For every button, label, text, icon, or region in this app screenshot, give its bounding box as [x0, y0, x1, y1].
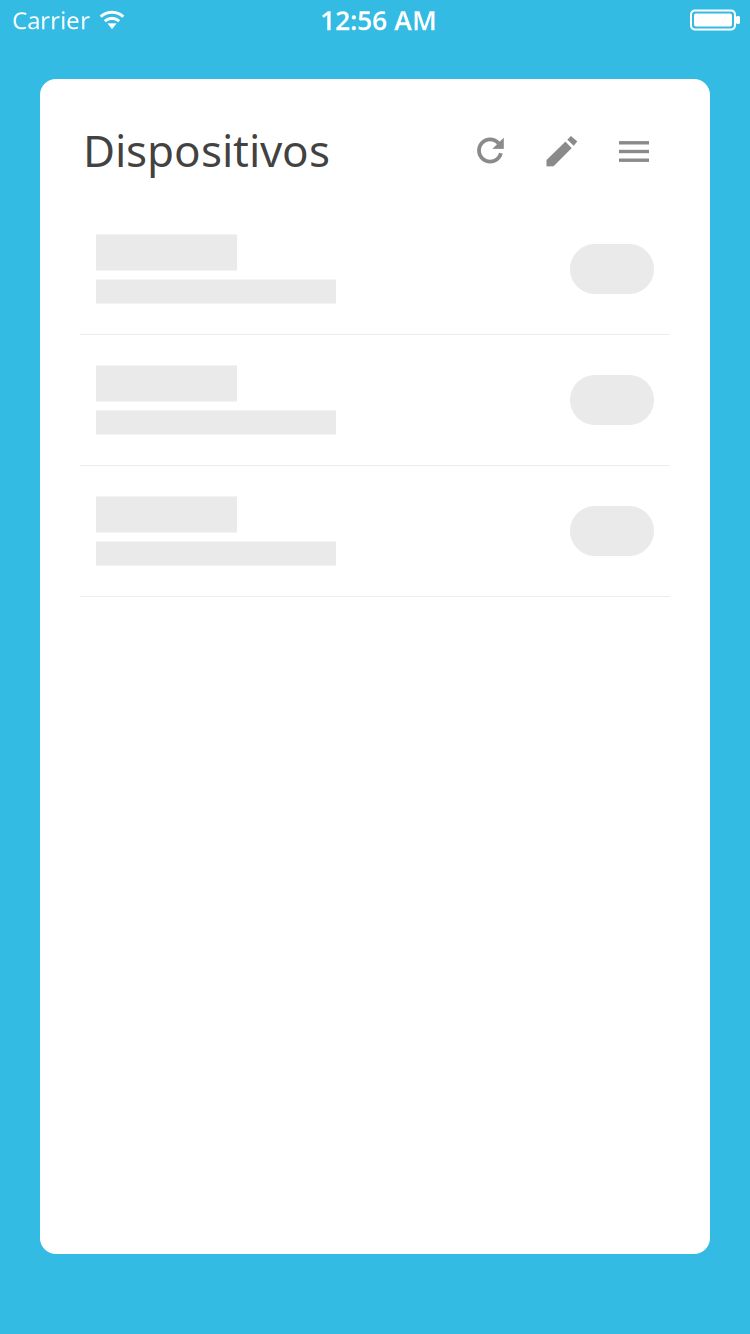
staticText: 12:56 AM: [320, 2, 437, 38]
button[interactable]: Edit: [539, 127, 585, 173]
button[interactable]: Menu: [611, 127, 657, 173]
staticText: Carrier: [12, 4, 90, 36]
button[interactable]: Loading device: [40, 466, 710, 596]
button[interactable]: Refresh: [467, 127, 513, 173]
staticText: Dispositivos: [83, 121, 330, 179]
button[interactable]: Loading device: [40, 204, 710, 334]
button[interactable]: Loading device: [40, 335, 710, 465]
